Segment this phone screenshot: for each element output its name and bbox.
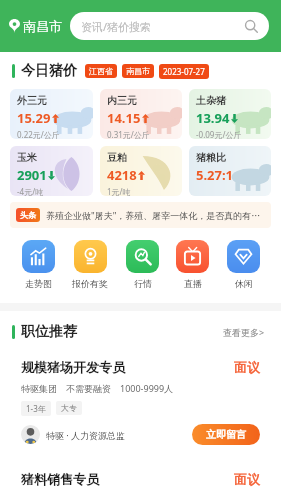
staticText: 豆粕	[107, 151, 127, 164]
staticText: 猪粮比	[196, 151, 226, 164]
staticText: 走势图	[25, 278, 52, 289]
staticText: 0.31元/公斤	[107, 129, 150, 139]
staticText: 立即留言	[206, 428, 246, 441]
staticText: 15.29	[17, 109, 51, 127]
staticText: 猪料销售专员	[21, 471, 228, 487]
staticText: 5.27:1	[196, 166, 234, 184]
staticText: 报价有奖	[72, 278, 108, 289]
button[interactable]: 立即留言	[192, 424, 260, 445]
button[interactable]: 外三元	[10, 89, 93, 139]
button[interactable]: 走势图	[20, 238, 57, 291]
button[interactable]: 江西省	[85, 64, 117, 78]
staticText: 2023-07-27	[163, 66, 205, 77]
button[interactable]: 资讯/猪价搜索	[70, 12, 269, 40]
button[interactable]: 休闲	[225, 238, 262, 291]
button[interactable]: 头条	[10, 202, 271, 228]
staticText: 13.94	[196, 109, 230, 127]
other: 休闲	[234, 247, 253, 266]
staticText: 特驱 · 人力资源总监	[46, 429, 192, 441]
staticText: 头条	[20, 210, 36, 220]
button[interactable]: 规模猪场开发专员	[11, 350, 270, 454]
button[interactable]: 查看更多>	[219, 322, 269, 342]
staticText: 规模猪场开发专员	[21, 359, 228, 375]
button[interactable]: 玉米	[10, 146, 93, 196]
button[interactable]: 内三元	[100, 89, 182, 139]
staticText: 今日猪价	[21, 62, 77, 80]
button[interactable]: 豆粕	[100, 146, 182, 196]
staticText: 面议	[234, 471, 260, 487]
button[interactable]: 土杂猪	[189, 89, 271, 139]
other: 走势图	[29, 247, 48, 266]
button[interactable]: 报价有奖	[70, 238, 110, 291]
staticText: 养殖企业做"屠夫"，养殖、屠宰一体化，是否真的有利...	[46, 209, 265, 221]
staticText: 行情	[134, 278, 152, 289]
staticText: 特驱集团	[21, 383, 57, 394]
staticText: 南昌市	[126, 66, 150, 76]
staticText: 4218	[107, 166, 137, 184]
staticText: 2901	[17, 166, 47, 184]
button[interactable]: 2023-07-27	[159, 64, 209, 79]
staticText: -0.09元/公斤	[196, 129, 242, 139]
staticText: 1元/吨	[107, 186, 131, 196]
staticText: 玉米	[17, 151, 37, 164]
staticText: 不需要融资	[66, 383, 111, 394]
button[interactable]: 猪料销售专员	[11, 462, 270, 500]
staticText: 查看更多>	[223, 326, 265, 338]
staticText: 土杂猪	[196, 94, 226, 107]
staticText: 1000-9999人	[120, 382, 174, 394]
button[interactable]: 南昌市	[9, 14, 62, 38]
button[interactable]: 猪粮比	[189, 146, 271, 196]
staticText: 内三元	[107, 94, 137, 107]
staticText: 外三元	[17, 94, 47, 107]
staticText: 休闲	[235, 278, 253, 289]
other: 报价有奖	[81, 247, 100, 266]
staticText: -4元/吨	[17, 186, 44, 196]
staticText: 江西省	[89, 66, 113, 76]
staticText: 0.22元/公斤	[17, 129, 60, 139]
staticText: 14.15	[107, 109, 141, 127]
staticText: 南昌市	[23, 18, 62, 34]
staticText: 1-3年	[26, 403, 46, 414]
staticText: 职位推荐	[21, 323, 77, 341]
button[interactable]: 直播	[174, 238, 211, 291]
staticText: 面议	[234, 359, 260, 375]
button[interactable]: 南昌市	[122, 64, 154, 78]
staticText: 直播	[184, 278, 202, 289]
staticText: 资讯/猪价搜索	[81, 19, 244, 34]
other: 直播	[183, 247, 202, 266]
staticText: 大专	[61, 403, 77, 413]
other: 行情	[133, 247, 152, 266]
button[interactable]: 行情	[124, 238, 161, 291]
